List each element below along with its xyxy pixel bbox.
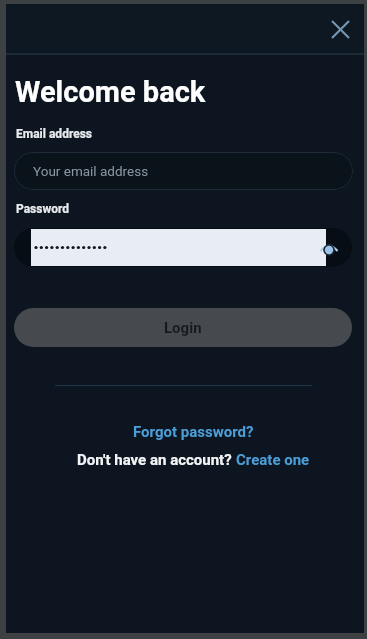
button[interactable] [318, 236, 342, 260]
button[interactable] [14, 228, 352, 267]
button[interactable] [324, 13, 356, 45]
staticText: Your email address [33, 163, 149, 179]
staticText: Welcome back [15, 75, 206, 109]
button[interactable]: Login [14, 308, 352, 347]
staticText: Login [164, 319, 202, 337]
staticText: Forgot password? [133, 423, 254, 441]
staticText: Email address [16, 127, 93, 141]
staticText: Password [16, 202, 70, 216]
button[interactable]: Your email address [14, 152, 353, 190]
button[interactable]: Create one [236, 451, 310, 469]
button[interactable]: Forgot password? [133, 423, 254, 441]
staticText: Create one [236, 451, 310, 469]
staticText: Don't have an account? [77, 451, 236, 469]
